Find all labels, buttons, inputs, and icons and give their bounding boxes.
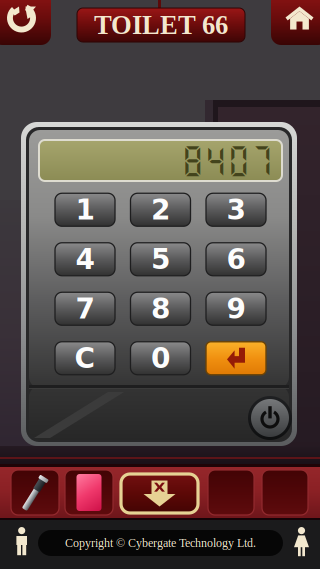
- staticText: C: [74, 342, 95, 375]
- button[interactable]: 2: [130, 193, 190, 226]
- staticText: 3: [226, 193, 245, 226]
- button[interactable]: 6: [206, 243, 266, 276]
- button[interactable]: Drop item: [121, 474, 198, 513]
- staticText: 0: [151, 342, 170, 375]
- staticText: 6: [226, 243, 245, 276]
- staticText: TOILET 66: [94, 10, 228, 40]
- button[interactable]: 9: [206, 292, 266, 325]
- button[interactable]: 7: [55, 292, 115, 325]
- button[interactable]: 0: [130, 342, 190, 375]
- button[interactable]: 3: [206, 193, 266, 226]
- staticText: 5: [151, 243, 170, 276]
- button[interactable]: Empty slot 5: [262, 470, 308, 515]
- button[interactable]: 8: [130, 292, 190, 325]
- staticText: 9: [226, 292, 245, 325]
- button[interactable]: 5: [130, 243, 190, 276]
- staticText: 8407: [181, 142, 273, 179]
- staticText: 4: [75, 243, 94, 276]
- button[interactable]: Copyright © Cybergate Technology Ltd.: [38, 530, 283, 556]
- staticText: Copyright © Cybergate Technology Ltd.: [65, 536, 256, 550]
- button[interactable]: Key card: [65, 470, 113, 515]
- button[interactable]: 1: [55, 193, 115, 226]
- staticText: 1: [75, 193, 94, 226]
- button[interactable]: 4: [55, 243, 115, 276]
- button[interactable]: Restart: [0, 0, 51, 45]
- staticText: 7: [75, 292, 94, 325]
- button[interactable]: C: [55, 342, 115, 375]
- button[interactable]: Enter: [206, 342, 266, 375]
- button[interactable]: Home: [271, 0, 320, 45]
- button[interactable]: Flashlight: [11, 470, 59, 515]
- button[interactable]: Empty slot 4: [208, 470, 254, 515]
- staticText: 2: [151, 193, 170, 226]
- button[interactable]: TOILET 66: [77, 8, 245, 42]
- staticText: 8: [151, 292, 170, 325]
- button[interactable]: Power: [248, 396, 292, 440]
